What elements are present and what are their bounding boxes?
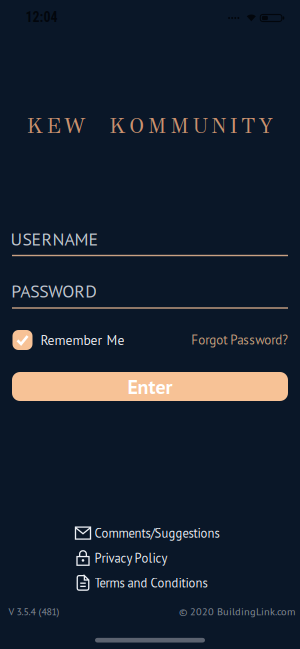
staticText: USERNAME	[10, 227, 98, 250]
button[interactable]: Enter	[12, 372, 288, 401]
button[interactable]: Remember Me	[12, 330, 124, 350]
staticText: © 2020 BuildingLink.com	[179, 605, 295, 618]
staticText: 12:04	[25, 9, 57, 25]
staticText: V 3.5.4 (481)	[8, 605, 59, 618]
staticText: Remember Me	[40, 331, 124, 349]
button[interactable]: Privacy Policy	[75, 550, 167, 566]
staticText: Comments/Suggestions	[94, 525, 219, 541]
staticText: KEW KOMMUNITY	[27, 113, 273, 139]
staticText: Enter	[127, 374, 172, 399]
staticText: Privacy Policy	[94, 550, 167, 566]
staticText: Terms and Conditions	[94, 575, 207, 591]
staticText: PASSWORD	[11, 279, 97, 302]
button[interactable]: Forgot Password?	[191, 331, 288, 348]
button[interactable]: Terms and Conditions	[75, 575, 207, 591]
button[interactable]: Comments/Suggestions	[75, 525, 219, 541]
staticText: Forgot Password?	[191, 331, 288, 348]
